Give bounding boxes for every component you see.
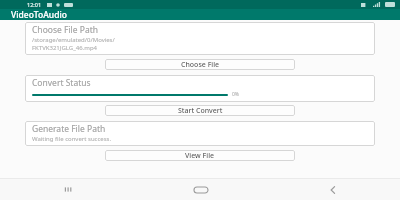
staticText: Waiting file convert success.: [32, 135, 112, 143]
staticText: Generate File Path: [32, 123, 106, 135]
button[interactable]: Home: [134, 179, 267, 200]
staticText: VideoToAudio: [11, 9, 67, 20]
staticText: Start Convert: [178, 106, 223, 116]
button[interactable]: Start Convert: [105, 105, 295, 116]
staticText: Convert Status: [32, 77, 91, 89]
staticText: 0%: [232, 91, 240, 98]
staticText: Choose File: [181, 60, 220, 70]
button[interactable]: View File: [105, 150, 295, 161]
button[interactable]: Back: [267, 179, 400, 200]
staticText: FKTVK321JGLG_46.mp4: [32, 44, 98, 52]
button[interactable]: Recent apps: [0, 179, 134, 200]
button[interactable]: Choose File: [105, 59, 295, 70]
staticText: View File: [185, 151, 215, 161]
staticText: /storage/emulated/0/Movies/: [32, 36, 115, 44]
staticText: 12:01: [27, 1, 42, 8]
staticText: Choose File Path: [32, 24, 99, 36]
